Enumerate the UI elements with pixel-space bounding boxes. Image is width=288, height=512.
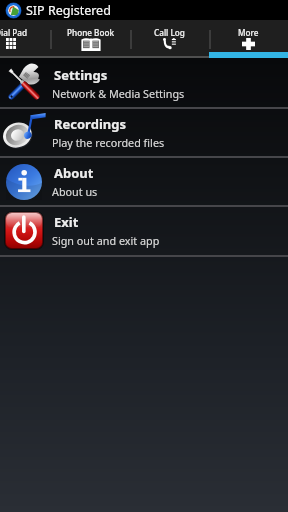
staticText: Recordings — [54, 115, 126, 133]
button[interactable]: Phone Book — [51, 20, 131, 58]
staticText: SIP Registered — [26, 2, 111, 19]
staticText: About us — [52, 184, 98, 199]
staticText: Sign out and exit app — [52, 233, 160, 248]
staticText: Call Log — [154, 27, 185, 38]
staticText: Play the recorded files — [52, 135, 165, 150]
staticText: Phone Book — [67, 27, 115, 38]
button[interactable]: Exit — [0, 207, 288, 254]
staticText: Network & Media Settings — [52, 86, 185, 101]
button[interactable]: Dial Pad — [0, 20, 51, 58]
button[interactable]: Settings — [0, 60, 288, 107]
staticText: Exit — [54, 213, 79, 231]
button[interactable]: Call Log — [130, 20, 209, 58]
button[interactable]: About — [0, 158, 288, 205]
button[interactable]: Recordings — [0, 109, 288, 156]
staticText: Dial Pad — [0, 27, 27, 38]
staticText: More — [238, 27, 259, 38]
button[interactable]: More — [209, 20, 288, 58]
staticText: Settings — [54, 66, 108, 84]
staticText: About — [54, 164, 94, 182]
